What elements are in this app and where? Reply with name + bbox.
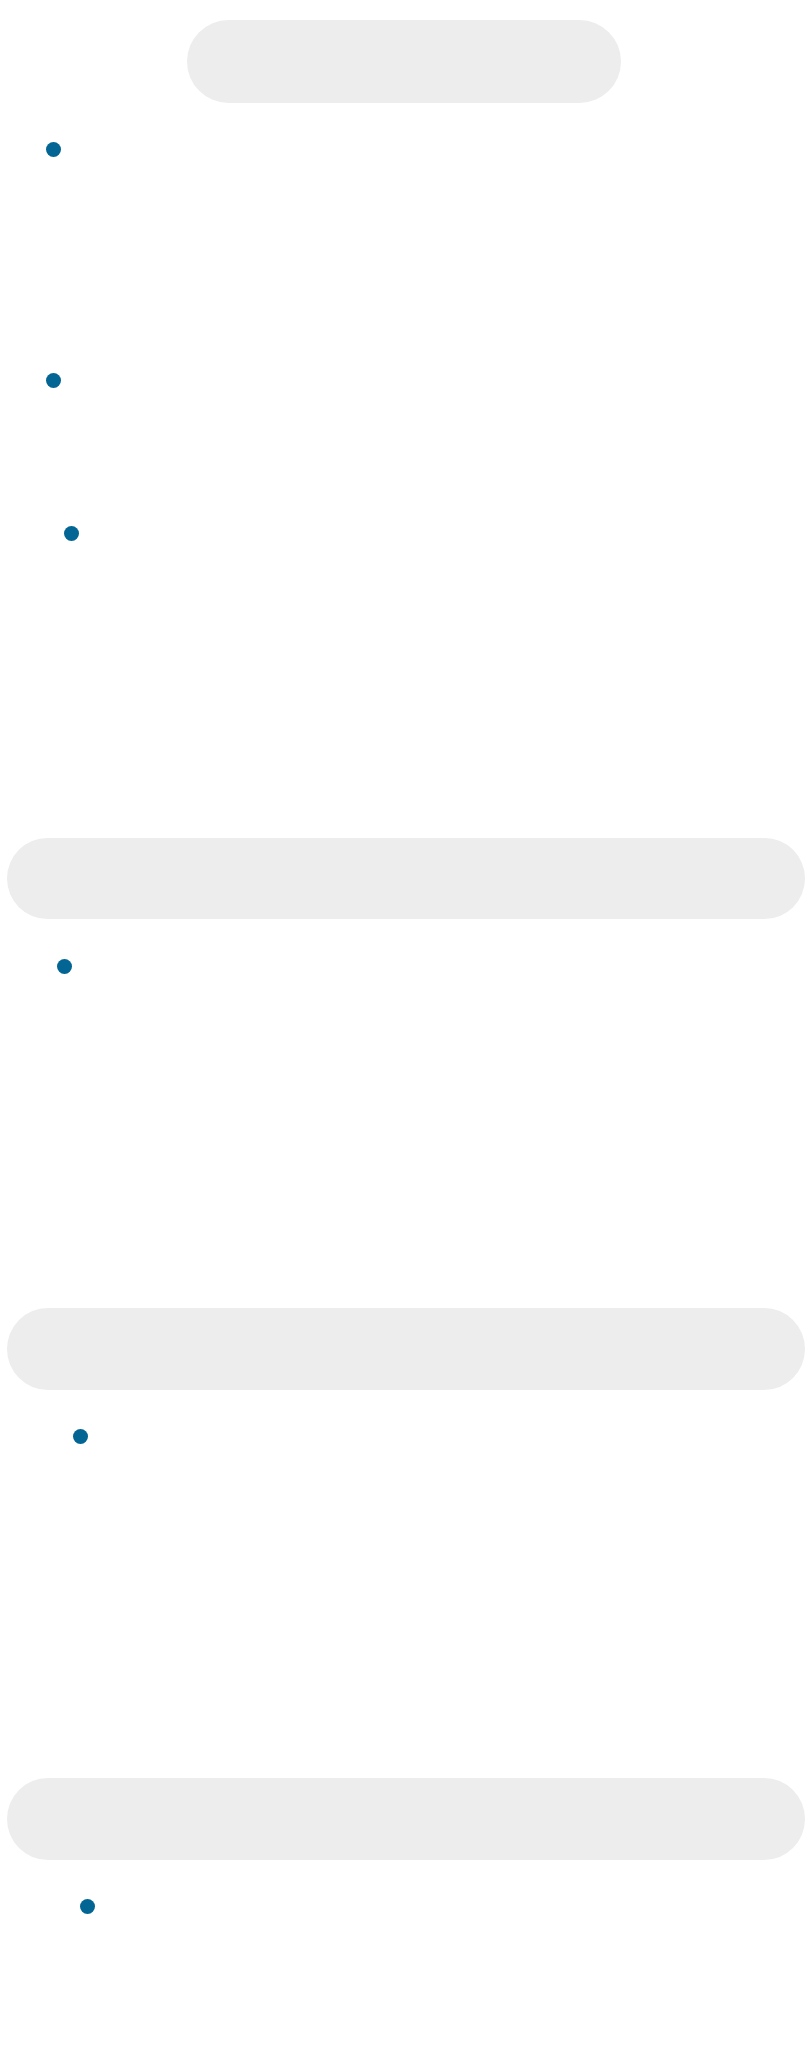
button[interactable]: Loading list item 3 bbox=[0, 526, 808, 541]
button[interactable]: Loading section 3 item bbox=[0, 1899, 808, 1914]
button[interactable]: Loading section 1 item bbox=[0, 959, 808, 974]
button[interactable]: Loading section 2 item bbox=[0, 1429, 808, 1444]
button[interactable]: Loading title bbox=[187, 20, 621, 103]
button[interactable]: Loading list item 1 bbox=[0, 142, 808, 157]
button[interactable]: Loading list item 2 bbox=[0, 373, 808, 388]
